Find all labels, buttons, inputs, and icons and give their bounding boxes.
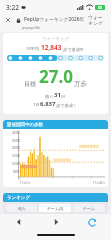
button[interactable]: ウォーキング (3, 33, 108, 114)
button[interactable]: Close tab (4, 16, 12, 24)
button[interactable]: Forward (37, 214, 74, 230)
staticText: 15000 (12, 154, 20, 158)
staticText: 6,837 (40, 100, 56, 108)
staticText: 歩で達成中 (63, 47, 85, 52)
button[interactable]: 個人 (6, 204, 37, 212)
staticText: 10000 (12, 162, 20, 166)
staticText: 3:22 (6, 3, 19, 12)
staticText: PepUpウォーキング2026年 (24, 16, 85, 23)
staticText: 82 (98, 5, 103, 10)
staticText: ウォーキング (42, 36, 70, 42)
staticText: 5000 (13, 170, 20, 174)
staticText: 開催期間中の歩数 (7, 122, 44, 128)
staticText: 万歩 (74, 80, 87, 88)
staticText: ランキング (7, 195, 31, 201)
other: Secure (14, 16, 22, 24)
staticText: 31 (54, 91, 61, 99)
staticText: ウォーキング (88, 14, 107, 25)
staticText: 27.0 (39, 65, 73, 88)
staticText: チーム (83, 206, 96, 211)
staticText: 30000 (12, 131, 20, 135)
staticText: 10平均 (26, 46, 40, 52)
staticText: 個人 (18, 206, 26, 211)
button[interactable]: 開催期間中の歩数 (3, 120, 108, 187)
staticText: 12,843 (41, 43, 62, 52)
staticText: 日 (61, 94, 66, 99)
staticText: チーム内 (47, 206, 64, 211)
staticText: 1日 (33, 102, 40, 108)
staticText: pepup.life (22, 25, 40, 30)
staticText: 25000 (12, 139, 20, 143)
staticText: 目標 (24, 80, 36, 88)
button[interactable]: Reload (74, 214, 111, 230)
staticText: 20000 (12, 146, 20, 150)
staticText: 0 (18, 177, 20, 181)
staticText: 11月1日 (20, 181, 31, 185)
staticText: 歩で達成！ (56, 103, 78, 108)
staticText: 残り (45, 94, 54, 99)
staticText: 11月30日 (93, 181, 105, 185)
button[interactable]: チーム (73, 204, 105, 212)
button[interactable]: チーム内 (39, 204, 71, 212)
button[interactable]: Back (0, 214, 37, 230)
